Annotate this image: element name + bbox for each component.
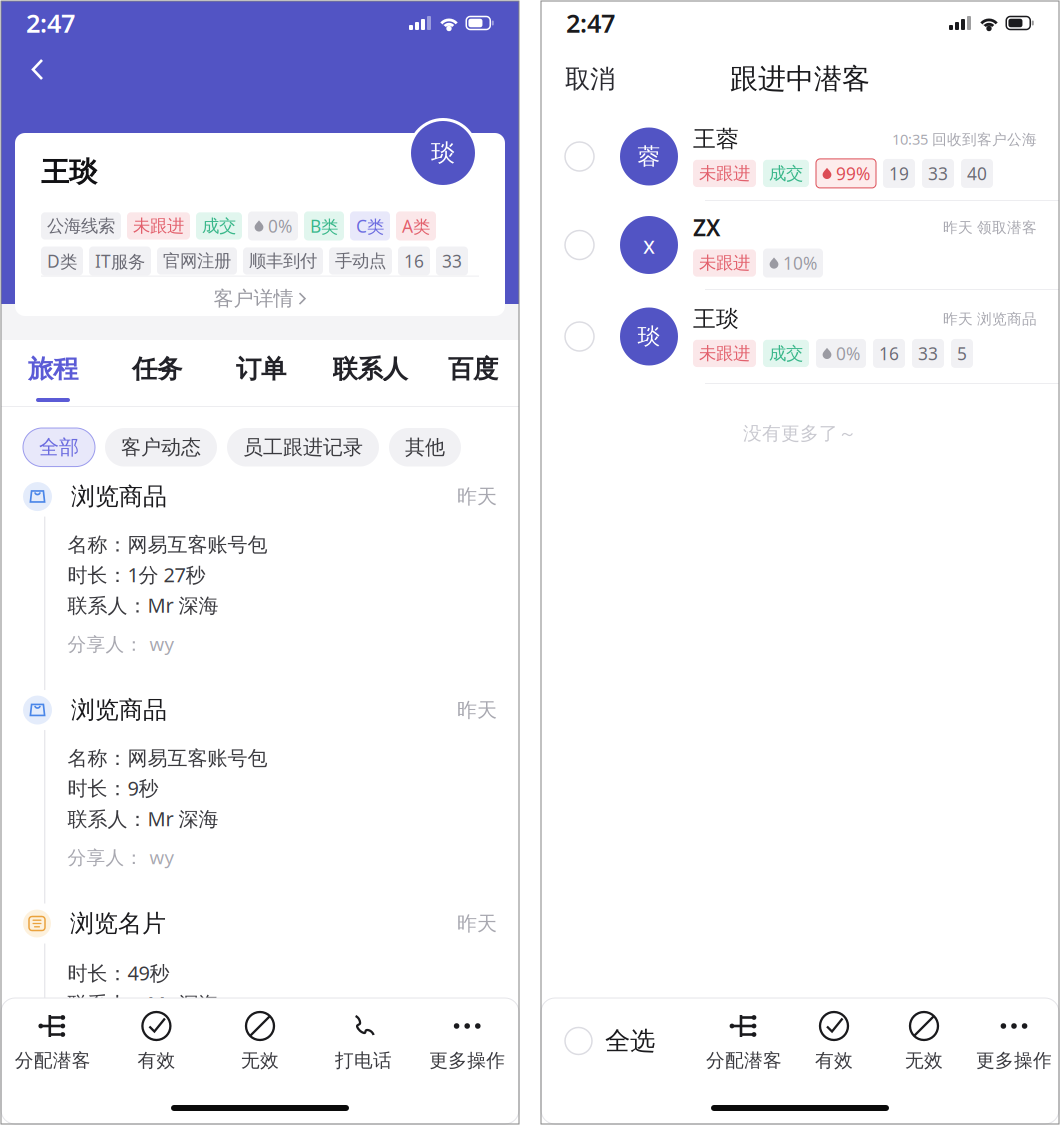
staticText: 联系人	[332, 353, 407, 384]
staticText: 员工跟进记录	[243, 435, 363, 460]
staticText: 客户动态	[121, 435, 201, 460]
staticText: 分享人： wy	[67, 845, 174, 869]
staticText: 16	[879, 342, 899, 365]
staticText: C类	[356, 214, 384, 237]
staticText: 分配潜客	[15, 1049, 91, 1072]
button[interactable]: 分配潜客	[699, 1010, 789, 1072]
staticText: 全选	[605, 1025, 655, 1056]
button[interactable]: 其他	[389, 428, 461, 467]
staticText: 联系人：Mr 深海	[67, 990, 218, 1017]
staticText: 未跟进	[699, 252, 750, 274]
button[interactable]: 旅程	[1, 340, 105, 406]
staticText: 联系人：Mr 深海	[67, 592, 218, 618]
staticText: 更多操作	[976, 1049, 1052, 1072]
staticText: 0%	[836, 342, 860, 365]
staticText: 时长：9秒	[67, 775, 158, 801]
staticText: 时长：49秒	[67, 959, 169, 986]
staticText: 0%	[268, 214, 292, 237]
staticText: 手动点	[335, 250, 386, 272]
button[interactable]: 蓉	[541, 113, 1059, 200]
staticText: 名称：网易互客账号包	[67, 746, 267, 771]
staticText: 订单	[236, 353, 286, 384]
staticText: 无效	[241, 1049, 279, 1072]
button[interactable]: 有效	[789, 1010, 879, 1072]
staticText: 分配潜客	[706, 1049, 782, 1072]
staticText: 昨天 领取潜客	[943, 218, 1037, 236]
staticText: 33	[442, 249, 462, 272]
staticText: 顺丰到付	[249, 250, 317, 272]
staticText: 昨天	[457, 484, 497, 509]
button[interactable]: 客户动态	[105, 428, 217, 467]
staticText: A类	[402, 214, 430, 237]
button[interactable]: 订单	[209, 340, 313, 406]
staticText: 时长：1分 27秒	[67, 561, 205, 588]
button[interactable]: 全部	[23, 428, 95, 467]
staticText: 浏览商品	[71, 482, 167, 511]
staticText: 5	[957, 342, 967, 365]
staticText: 有效	[137, 1049, 175, 1072]
button[interactable]: 全选	[541, 1011, 659, 1071]
button[interactable]: 联系人	[313, 340, 427, 406]
staticText: 王琰	[693, 305, 739, 333]
button[interactable]: 更多操作	[415, 1010, 519, 1072]
staticText: 有效	[815, 1049, 853, 1072]
staticText: 打电话	[335, 1049, 392, 1072]
staticText: 成交	[769, 163, 803, 184]
staticText: 浏览名片	[70, 909, 166, 938]
staticText: 旅程	[28, 353, 78, 384]
staticText: 更多操作	[429, 1049, 505, 1072]
staticText: 99%	[836, 162, 870, 185]
staticText: 取消	[565, 63, 615, 94]
staticText: 33	[928, 162, 948, 185]
button[interactable]: Back	[13, 45, 62, 94]
staticText: 昨天 浏览商品	[943, 310, 1037, 328]
button[interactable]: 打电话	[312, 1010, 415, 1072]
button[interactable]: 无效	[879, 1010, 969, 1072]
button[interactable]: 琰	[541, 290, 1059, 383]
staticText: 未跟进	[699, 343, 750, 364]
staticText: 客户详情	[213, 286, 293, 311]
button[interactable]: 无效	[208, 1010, 312, 1072]
button[interactable]: 分配潜客	[1, 1010, 105, 1072]
staticText: 没有更多了～	[743, 422, 857, 445]
button[interactable]: 更多操作	[969, 1010, 1059, 1072]
staticText: 成交	[769, 343, 803, 364]
staticText: x	[643, 230, 655, 260]
staticText: 名称：网易互客账号包	[67, 533, 267, 557]
staticText: 33	[918, 342, 938, 365]
staticText: 公海线索	[47, 215, 115, 237]
staticText: D类	[47, 249, 77, 273]
button[interactable]: 客户详情	[15, 277, 505, 321]
staticText: 10%	[783, 251, 817, 274]
staticText: B类	[310, 214, 338, 237]
staticText: 无效	[905, 1049, 943, 1072]
staticText: 蓉	[637, 143, 660, 170]
staticText: 19	[889, 162, 909, 185]
button[interactable]: 任务	[105, 340, 209, 406]
staticText: 联系人：Mr 深海	[67, 805, 218, 832]
button[interactable]: 有效	[105, 1010, 208, 1072]
staticText: 任务	[132, 353, 182, 384]
staticText: 全部	[39, 435, 79, 460]
staticText: 琰	[431, 138, 455, 168]
button[interactable]: 取消	[541, 53, 639, 104]
staticText: 王蓉	[693, 125, 739, 153]
staticText: 成交	[202, 215, 236, 237]
button[interactable]: 百度	[427, 340, 519, 406]
staticText: 跟进中潜客	[730, 62, 870, 96]
staticText: 未跟进	[133, 215, 184, 237]
staticText: 昨天	[457, 698, 497, 722]
staticText: 2:47	[566, 6, 615, 40]
staticText: 10:35 回收到客户公海	[892, 129, 1037, 149]
staticText: 其他	[405, 435, 445, 460]
staticText: 40	[967, 162, 987, 185]
staticText: IT服务	[95, 249, 145, 273]
button[interactable]: 员工跟进记录	[227, 428, 379, 467]
staticText: 分享人： wy	[67, 631, 174, 656]
staticText: 未跟进	[699, 163, 750, 184]
staticText: 百度	[448, 353, 498, 384]
staticText: 昨天	[457, 911, 497, 936]
staticText: 王琰	[41, 155, 97, 189]
staticText: 官网注册	[163, 250, 231, 272]
button[interactable]: x	[541, 201, 1059, 289]
